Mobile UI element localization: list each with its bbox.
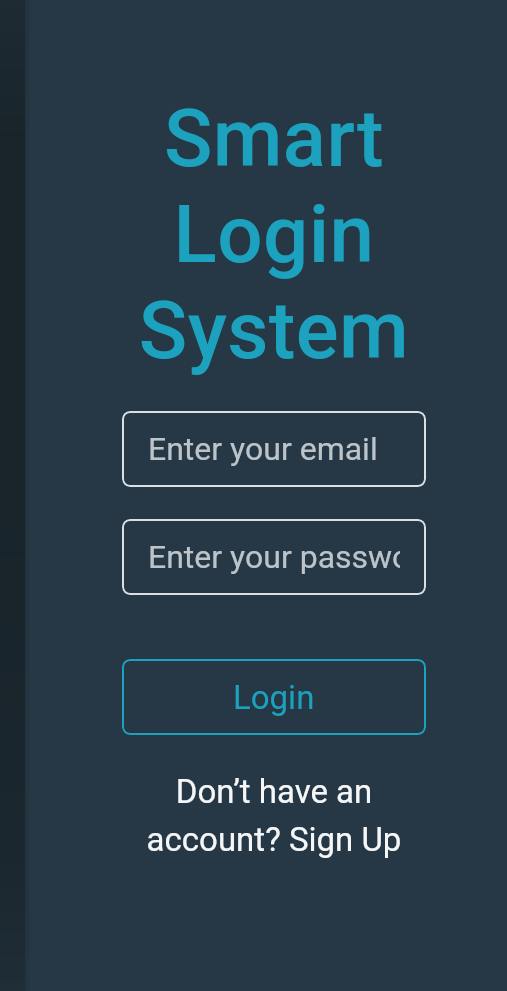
- button[interactable]: Don’t have an account? Sign Up: [122, 772, 426, 859]
- staticText: Login: [233, 678, 315, 717]
- button[interactable]: Email address input: [122, 411, 426, 487]
- staticText: Enter your password: [148, 538, 400, 576]
- button[interactable]: Password input: [122, 519, 426, 595]
- staticText: Smart Login System: [122, 92, 426, 378]
- staticText: Enter your email: [148, 430, 378, 468]
- staticText: Don’t have an account? Sign Up: [122, 772, 426, 859]
- button[interactable]: Login: [122, 659, 426, 735]
